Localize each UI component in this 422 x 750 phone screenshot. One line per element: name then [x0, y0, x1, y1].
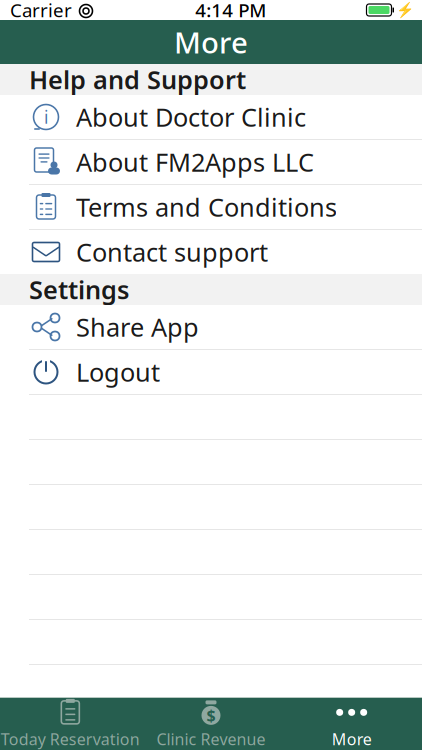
- staticText: Settings: [29, 273, 129, 306]
- button[interactable]: More: [281, 698, 422, 750]
- staticText: More: [174, 22, 248, 61]
- staticText: More: [332, 728, 372, 750]
- staticText: About Doctor Clinic: [76, 100, 306, 134]
- staticText: Contact support: [76, 235, 268, 269]
- staticText: Carrier: [10, 0, 72, 22]
- button[interactable]: $: [141, 698, 281, 750]
- staticText: Help and Support: [29, 63, 246, 96]
- staticText: Today Reservation: [1, 728, 140, 750]
- staticText: Terms and Conditions: [76, 190, 337, 224]
- button[interactable]: Today Reservation: [0, 698, 141, 750]
- staticText: i: [44, 105, 48, 128]
- staticText: Logout: [76, 355, 160, 389]
- staticText: ⚡: [396, 2, 414, 18]
- staticText: Clinic Revenue: [156, 728, 265, 750]
- button[interactable]: About FM2Apps LLC: [0, 140, 422, 184]
- button[interactable]: Terms and Conditions: [0, 185, 422, 229]
- staticText: 4:14 PM: [195, 0, 266, 22]
- button[interactable]: Logout: [0, 350, 422, 394]
- staticText: Share App: [76, 310, 199, 344]
- button[interactable]: i: [0, 95, 422, 139]
- staticText: About FM2Apps LLC: [76, 145, 314, 179]
- staticText: $: [206, 705, 215, 726]
- button[interactable]: Share App: [0, 305, 422, 349]
- button[interactable]: Contact support: [0, 230, 422, 274]
